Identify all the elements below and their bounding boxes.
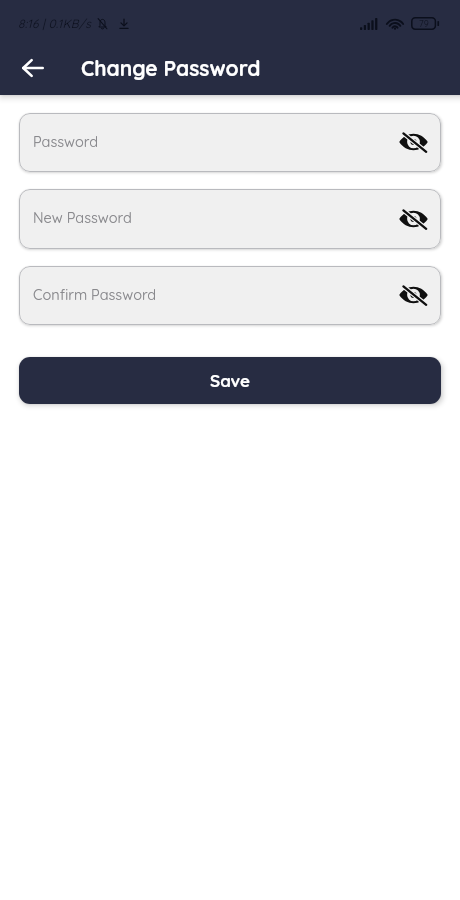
button[interactable]: Show password bbox=[399, 127, 428, 156]
button[interactable]: Back bbox=[11, 46, 55, 90]
button[interactable]: Save bbox=[19, 357, 441, 404]
staticText: Save bbox=[210, 370, 251, 391]
button[interactable]: Show password bbox=[399, 204, 428, 233]
staticText: Change Password bbox=[81, 55, 261, 81]
staticText: Confirm Password bbox=[33, 285, 157, 303]
staticText: New Password bbox=[33, 208, 132, 226]
staticText: 8:16 | 0.1KB/s bbox=[18, 16, 92, 31]
button[interactable]: New Password bbox=[19, 189, 441, 249]
staticText: Password bbox=[33, 132, 99, 150]
button[interactable]: Show password bbox=[399, 280, 428, 309]
button[interactable]: Confirm Password bbox=[19, 266, 441, 325]
button[interactable]: Password bbox=[19, 113, 441, 172]
staticText: 79 bbox=[419, 18, 429, 29]
